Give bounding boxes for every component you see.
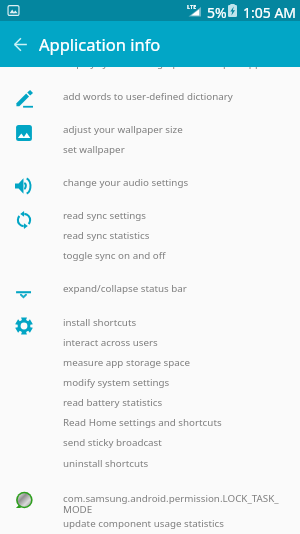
staticText: modify system settings — [63, 376, 170, 389]
staticText: interact across users — [63, 336, 158, 349]
button[interactable]: Wallpaper — [8, 117, 40, 149]
staticText: LTE — [187, 3, 197, 10]
staticText: 1:05 AM — [243, 3, 297, 22]
staticText: measure app storage space — [63, 356, 190, 369]
staticText: update component usage statistics — [63, 517, 224, 530]
button[interactable]: Status bar — [8, 277, 40, 309]
staticText: Application info — [39, 33, 161, 55]
staticText: com.samsung.android.permission.LOCK_TASK… — [63, 492, 279, 505]
staticText: toggle sync on and off — [63, 249, 166, 262]
staticText: install shortcuts — [63, 316, 137, 329]
button[interactable]: Back — [3, 27, 37, 61]
staticText: MODE — [63, 503, 93, 516]
staticText: 5% — [207, 3, 227, 22]
staticText: send sticky broadcast — [63, 436, 162, 449]
button[interactable]: Settings — [8, 310, 40, 342]
staticText: uninstall shortcuts — [63, 457, 149, 470]
button[interactable]: Sync — [8, 204, 40, 236]
staticText: set wallpaper — [63, 143, 125, 156]
staticText: read sync settings — [63, 209, 147, 222]
staticText: read battery statistics — [63, 396, 163, 409]
staticText: Read Home settings and shortcuts — [63, 416, 222, 429]
button[interactable]: Other — [8, 484, 40, 516]
staticText: read sync statistics — [63, 229, 150, 242]
button[interactable]: Edit — [8, 83, 40, 115]
button[interactable]: Audio — [8, 170, 40, 202]
staticText: add words to user-defined dictionary — [63, 90, 233, 103]
staticText: adjust your wallpaper size — [63, 123, 183, 136]
staticText: display system-level graphics on top of … — [63, 57, 266, 70]
staticText: change your audio settings — [63, 176, 189, 189]
staticText: expand/collapse status bar — [63, 282, 187, 295]
